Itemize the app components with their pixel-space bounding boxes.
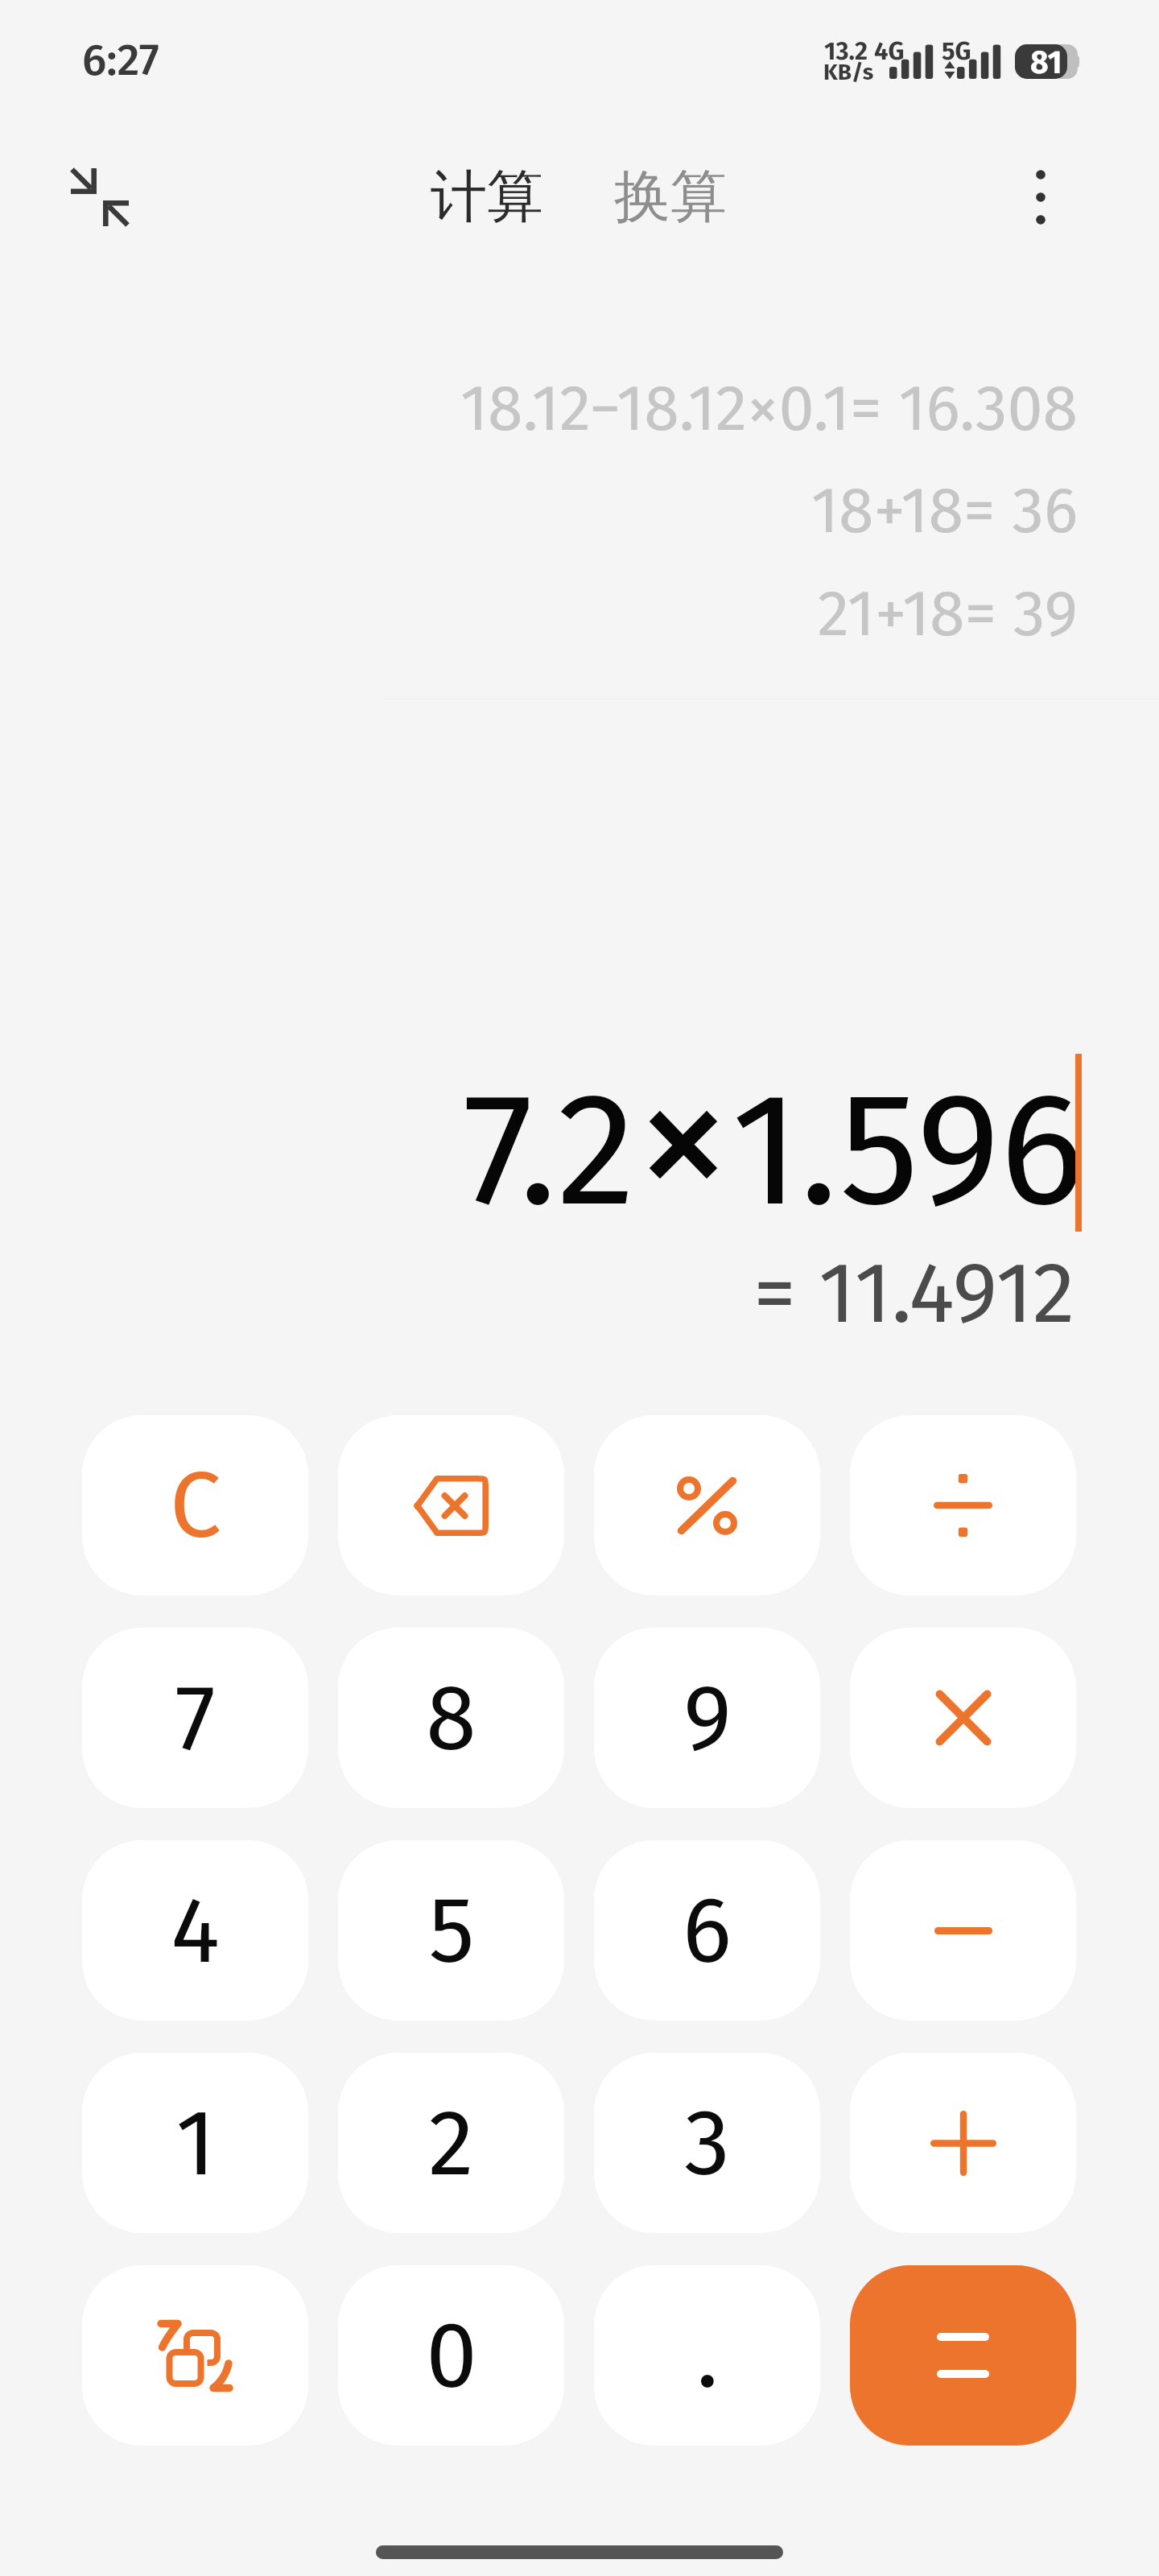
- button[interactable]: 1: [82, 2053, 308, 2233]
- staticText: 8: [426, 1663, 476, 1773]
- staticText: = 11.4912: [753, 1242, 1075, 1344]
- button[interactable]: 计算: [411, 149, 524, 246]
- button[interactable]: [850, 1415, 1076, 1596]
- staticText: 5: [428, 1876, 475, 1986]
- button[interactable]: Backspace: [338, 1415, 564, 1596]
- staticText: 18.12−18.12×0.1= 16.308 18+18= 36 21+18=…: [460, 370, 1078, 652]
- button[interactable]: C: [82, 1415, 308, 1596]
- button[interactable]: 3: [594, 2053, 820, 2233]
- staticText: 2: [428, 2088, 474, 2198]
- button[interactable]: .: [594, 2265, 820, 2446]
- button[interactable]: [850, 1628, 1076, 1808]
- button[interactable]: More options: [992, 149, 1089, 246]
- button[interactable]: 6: [594, 1840, 820, 2021]
- staticText: 计算: [431, 162, 543, 233]
- staticText: 换算: [614, 162, 727, 233]
- staticText: C: [170, 1451, 221, 1561]
- staticText: 7.2×1.596: [463, 1024, 1085, 1254]
- staticText: 9: [683, 1663, 732, 1773]
- button[interactable]: 5: [338, 1840, 564, 2021]
- button[interactable]: 8: [338, 1628, 564, 1808]
- staticText: 0: [426, 2301, 477, 2411]
- button[interactable]: [850, 1840, 1076, 2021]
- staticText: 4G: [874, 36, 905, 66]
- staticText: 3: [684, 2088, 730, 2198]
- staticText: .: [696, 2301, 719, 2411]
- button[interactable]: 2: [338, 2053, 564, 2233]
- staticText: 5G: [942, 36, 971, 66]
- button[interactable]: 换算: [595, 149, 707, 246]
- staticText: 81: [1030, 44, 1062, 80]
- button[interactable]: 9: [594, 1628, 820, 1808]
- button[interactable]: Convert: [82, 2265, 308, 2446]
- button[interactable]: [594, 1415, 820, 1596]
- button[interactable]: Collapse: [52, 149, 148, 246]
- button[interactable]: 0: [338, 2265, 564, 2446]
- staticText: 6:27: [82, 34, 159, 87]
- button[interactable]: Equals: [850, 2265, 1076, 2446]
- staticText: KB/s: [823, 59, 874, 86]
- staticText: 7: [175, 1663, 216, 1773]
- button[interactable]: 7: [82, 1628, 308, 1808]
- staticText: 4: [171, 1876, 220, 1986]
- button[interactable]: 4: [82, 1840, 308, 2021]
- staticText: 6: [683, 1876, 732, 1986]
- staticText: 1: [175, 2088, 216, 2198]
- staticText: 13.2: [824, 36, 868, 66]
- button[interactable]: [850, 2053, 1076, 2233]
